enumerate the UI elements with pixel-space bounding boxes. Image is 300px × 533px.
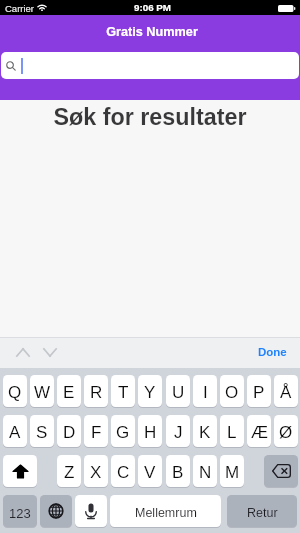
staticText: S xyxy=(36,423,48,442)
button[interactable]: B xyxy=(166,455,190,487)
button[interactable]: K xyxy=(193,415,217,447)
button[interactable]: Y xyxy=(138,375,162,407)
staticText: F xyxy=(91,423,102,442)
staticText: Done xyxy=(258,346,287,359)
button[interactable]: N xyxy=(193,455,217,487)
staticText: V xyxy=(144,463,156,482)
staticText: Æ xyxy=(251,423,268,442)
button[interactable]: I xyxy=(193,375,217,407)
staticText: M xyxy=(225,463,240,482)
staticText: Z xyxy=(64,463,75,482)
button[interactable]: Mellemrum xyxy=(110,495,221,527)
button[interactable]: C xyxy=(111,455,135,487)
button[interactable]: L xyxy=(220,415,244,447)
button[interactable]: T xyxy=(111,375,135,407)
button[interactable]: J xyxy=(166,415,190,447)
staticText: W xyxy=(34,383,51,402)
staticText: P xyxy=(253,383,265,402)
button[interactable]: Æ xyxy=(247,415,271,447)
button[interactable]: Previous field xyxy=(9,340,37,365)
button[interactable]: X xyxy=(84,455,108,487)
staticText: Retur xyxy=(247,506,278,520)
button[interactable]: V xyxy=(138,455,162,487)
staticText: T xyxy=(118,383,129,402)
button[interactable]: R xyxy=(84,375,108,407)
button[interactable]: U xyxy=(166,375,190,407)
staticText: A xyxy=(9,423,21,442)
button[interactable]: 123 xyxy=(3,495,37,527)
staticText: Carrier xyxy=(5,3,35,14)
staticText: X xyxy=(90,463,102,482)
staticText: 9:06 PM xyxy=(134,2,172,13)
staticText: O xyxy=(225,383,239,402)
staticText: Q xyxy=(8,383,22,402)
staticText: B xyxy=(172,463,184,482)
button[interactable]: Backspace xyxy=(264,455,298,487)
staticText: Å xyxy=(280,383,292,402)
staticText: Y xyxy=(144,383,156,402)
button[interactable]: M xyxy=(220,455,244,487)
button[interactable]: A xyxy=(3,415,27,447)
staticText: L xyxy=(227,423,237,442)
button[interactable]: Done xyxy=(253,340,292,365)
staticText: C xyxy=(117,463,130,482)
button[interactable]: Dictate xyxy=(75,495,107,527)
staticText: H xyxy=(144,423,157,442)
button[interactable]: H xyxy=(138,415,162,447)
staticText: R xyxy=(90,383,103,402)
staticText: D xyxy=(63,423,76,442)
staticText: Søk for resultater xyxy=(0,104,300,130)
button[interactable]: O xyxy=(220,375,244,407)
staticText: E xyxy=(63,383,75,402)
staticText: G xyxy=(116,423,130,442)
button[interactable]: W xyxy=(30,375,54,407)
staticText: N xyxy=(199,463,212,482)
button[interactable]: E xyxy=(57,375,81,407)
button[interactable]: Ø xyxy=(274,415,298,447)
button[interactable]: Switch keyboard xyxy=(40,495,72,527)
button[interactable]: P xyxy=(247,375,271,407)
button[interactable]: Search xyxy=(1,52,299,79)
button[interactable]: S xyxy=(30,415,54,447)
staticText: U xyxy=(172,383,185,402)
button[interactable]: G xyxy=(111,415,135,447)
button[interactable]: F xyxy=(84,415,108,447)
button[interactable]: Q xyxy=(3,375,27,407)
button[interactable]: Å xyxy=(274,375,298,407)
staticText: K xyxy=(199,423,211,442)
staticText: 123 xyxy=(9,506,31,521)
button[interactable]: Next field xyxy=(36,340,64,365)
button[interactable]: D xyxy=(57,415,81,447)
button[interactable]: Retur xyxy=(227,495,297,527)
staticText: I xyxy=(203,383,208,402)
staticText: J xyxy=(174,423,183,442)
staticText: Mellemrum xyxy=(135,506,197,520)
button[interactable]: Shift xyxy=(3,455,37,487)
staticText: Ø xyxy=(279,423,293,442)
staticText: Gratis Nummer xyxy=(2,25,300,39)
button[interactable]: Z xyxy=(57,455,81,487)
